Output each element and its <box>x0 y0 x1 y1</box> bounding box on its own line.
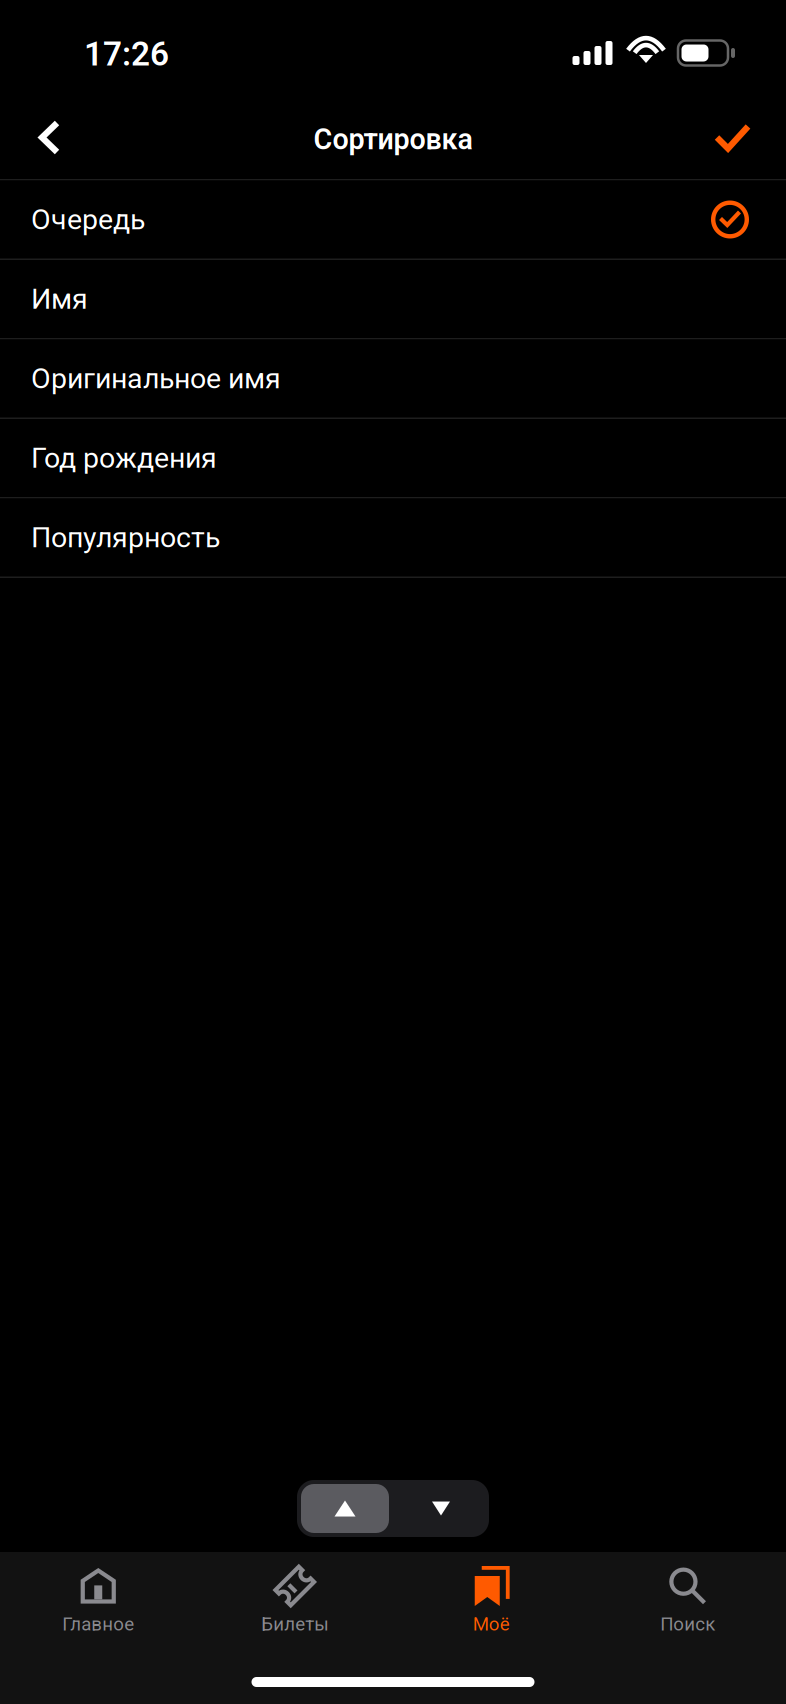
button[interactable]: Вверх <box>297 1480 393 1537</box>
staticText: Популярность <box>31 521 220 554</box>
staticText: Поиск <box>660 1613 715 1635</box>
button[interactable]: Билеты <box>196 1552 393 1636</box>
button[interactable]: Имя <box>0 260 786 338</box>
staticText: Оригинальное имя <box>31 362 281 395</box>
staticText: Год рождения <box>31 441 217 475</box>
staticText: Очередь <box>31 203 145 236</box>
button[interactable]: Популярность <box>0 498 786 576</box>
button[interactable]: Готово <box>689 99 786 175</box>
button[interactable]: Главное <box>0 1552 196 1636</box>
button[interactable]: Год рождения <box>0 419 786 497</box>
button[interactable]: Очередь <box>0 180 786 258</box>
button[interactable]: Оригинальное имя <box>0 339 786 417</box>
staticText: Билеты <box>261 1613 328 1635</box>
button[interactable]: Вниз <box>393 1480 489 1537</box>
button[interactable]: Поиск <box>589 1552 786 1636</box>
button[interactable]: Назад <box>0 101 85 174</box>
staticText: Главное <box>62 1613 134 1635</box>
staticText: Имя <box>31 282 88 316</box>
staticText: Моё <box>473 1613 510 1635</box>
staticText: Сортировка <box>313 123 472 156</box>
button[interactable]: Моё <box>393 1552 589 1636</box>
staticText: 17:26 <box>84 34 169 74</box>
